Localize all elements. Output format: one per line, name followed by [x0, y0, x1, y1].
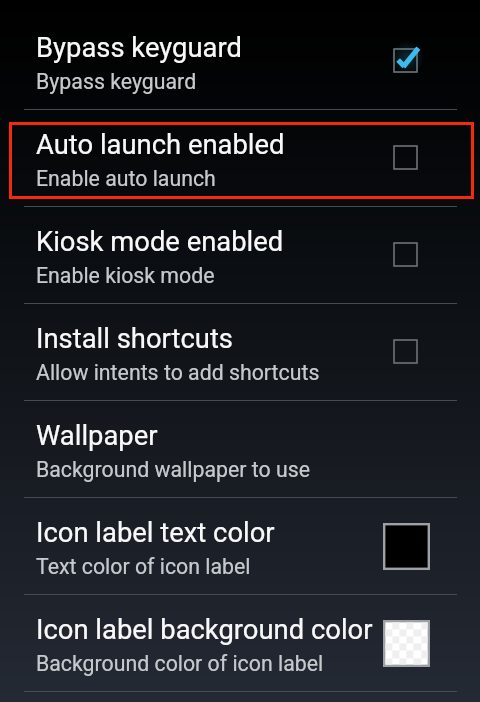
staticText: Enable kiosk mode: [36, 263, 215, 288]
staticText: Bypass keyguard: [36, 69, 197, 94]
staticText: Kiosk mode enabled: [36, 226, 284, 258]
button[interactable]: Install shortcuts, not checked: [378, 324, 434, 380]
button[interactable]: Icon label background color: [0, 595, 480, 691]
staticText: Background color of icon label: [36, 651, 324, 676]
staticText: Background wallpaper to use: [36, 457, 310, 482]
staticText: Icon label text color: [36, 517, 275, 549]
button[interactable]: Auto launch enabled, not checked: [378, 130, 434, 186]
staticText: Icon label background color: [36, 614, 373, 646]
staticText: Wallpaper: [36, 420, 158, 452]
staticText: Auto launch enabled: [36, 129, 285, 161]
button[interactable]: Icon label text color swatch, black: [378, 518, 434, 574]
staticText: Enable auto launch: [36, 166, 216, 191]
staticText: Allow intents to add shortcuts: [36, 360, 320, 385]
button[interactable]: Kiosk mode enabled, not checked: [378, 227, 434, 283]
staticText: Bypass keyguard: [36, 32, 242, 64]
button[interactable]: Kiosk mode enabled: [0, 207, 480, 303]
button[interactable]: Bypass keyguard, checked: [378, 33, 434, 89]
button[interactable]: Install shortcuts: [0, 304, 480, 400]
staticText: Install shortcuts: [36, 323, 233, 355]
button[interactable]: Icon label background color swatch, tran…: [378, 615, 434, 671]
button[interactable]: Icon label text color: [0, 498, 480, 594]
button[interactable]: Bypass keyguard: [0, 13, 480, 109]
button[interactable]: Auto launch enabled: [0, 110, 480, 206]
button[interactable]: Wallpaper: [0, 401, 480, 497]
staticText: Text color of icon label: [36, 554, 251, 579]
